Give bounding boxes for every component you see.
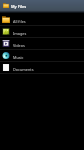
- button[interactable]: Videos: [0, 38, 84, 49]
- button[interactable]: My Files: [0, 0, 84, 13]
- button[interactable]: All files: [0, 14, 84, 25]
- staticText: Documents: [13, 67, 34, 72]
- staticText: Videos: [13, 43, 25, 48]
- button[interactable]: Music: [0, 50, 84, 61]
- button[interactable]: Images: [0, 26, 84, 37]
- button[interactable]: Documents: [0, 62, 84, 73]
- staticText: Music: [13, 55, 24, 60]
- staticText: All files: [13, 19, 26, 24]
- staticText: Images: [13, 31, 27, 36]
- staticText: My Files: [11, 4, 27, 9]
